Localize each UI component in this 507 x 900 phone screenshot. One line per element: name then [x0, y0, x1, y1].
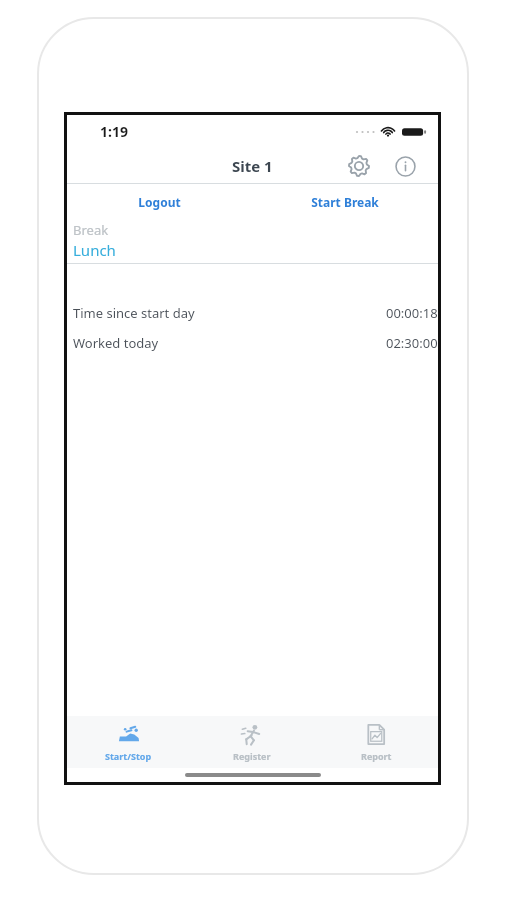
staticText: Register	[233, 750, 271, 762]
staticText: Time since start day	[73, 304, 195, 322]
staticText: Break	[73, 221, 109, 239]
staticText: Start/Stop	[105, 750, 152, 762]
staticText: Lunch	[73, 240, 116, 260]
staticText: Logout	[138, 194, 181, 210]
staticText: 1:19	[100, 122, 128, 141]
button[interactable]: Break	[67, 220, 438, 263]
staticText: Site 1	[232, 156, 273, 176]
button[interactable]: Logout	[67, 184, 252, 220]
button[interactable]: Settings	[342, 149, 376, 183]
button[interactable]: Start/Stop	[67, 716, 190, 768]
staticText: 00:00:18	[386, 304, 438, 322]
button[interactable]: Start Break	[252, 184, 438, 220]
staticText: 02:30:00	[386, 334, 438, 352]
button[interactable]: Report	[314, 716, 438, 768]
button[interactable]: Info	[388, 149, 422, 183]
staticText: Report	[361, 750, 392, 762]
button[interactable]: Register	[190, 716, 314, 768]
staticText: Start Break	[311, 194, 379, 210]
staticText: Worked today	[73, 334, 159, 352]
